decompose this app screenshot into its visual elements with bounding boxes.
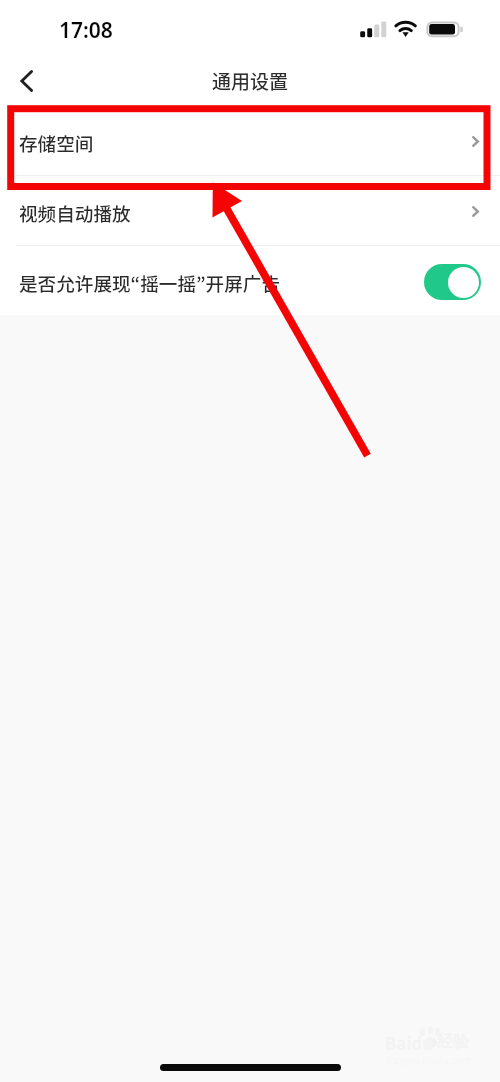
button[interactable]: 存储空间	[0, 106, 500, 175]
staticText: 17:08	[59, 16, 113, 45]
staticText: 是否允许展现“摇一摇”开屏广告	[19, 269, 280, 296]
staticText: 通用设置	[212, 67, 289, 95]
button[interactable]: 视频自动播放	[0, 176, 500, 245]
staticText: 视频自动播放	[19, 199, 131, 226]
button[interactable]: Back	[0, 55, 52, 106]
button[interactable]: Toggle shake ad	[424, 264, 481, 300]
staticText: 存储空间	[19, 129, 94, 156]
